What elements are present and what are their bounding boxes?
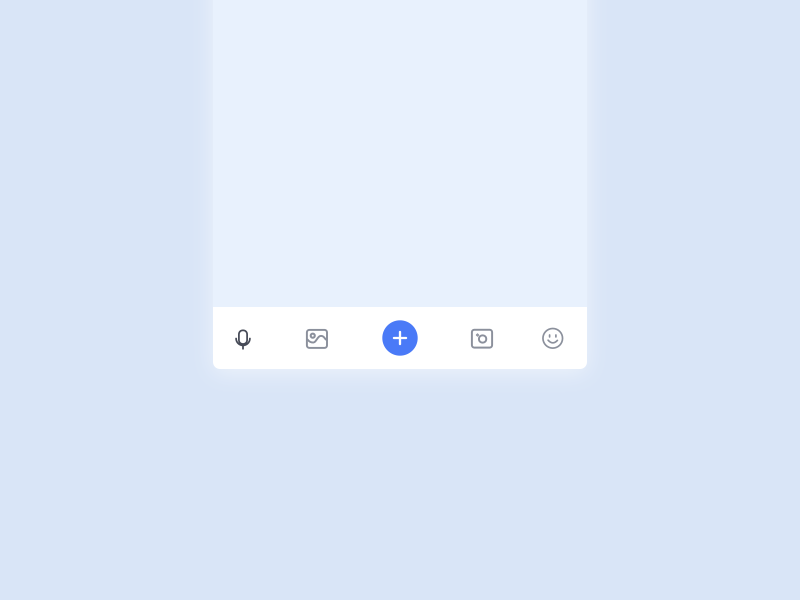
button[interactable]: Stickers (528, 307, 578, 369)
button[interactable]: Photos (292, 307, 342, 369)
button[interactable]: Camera (457, 307, 507, 369)
button[interactable]: Voice message (218, 307, 268, 369)
button[interactable]: Add (375, 307, 425, 369)
